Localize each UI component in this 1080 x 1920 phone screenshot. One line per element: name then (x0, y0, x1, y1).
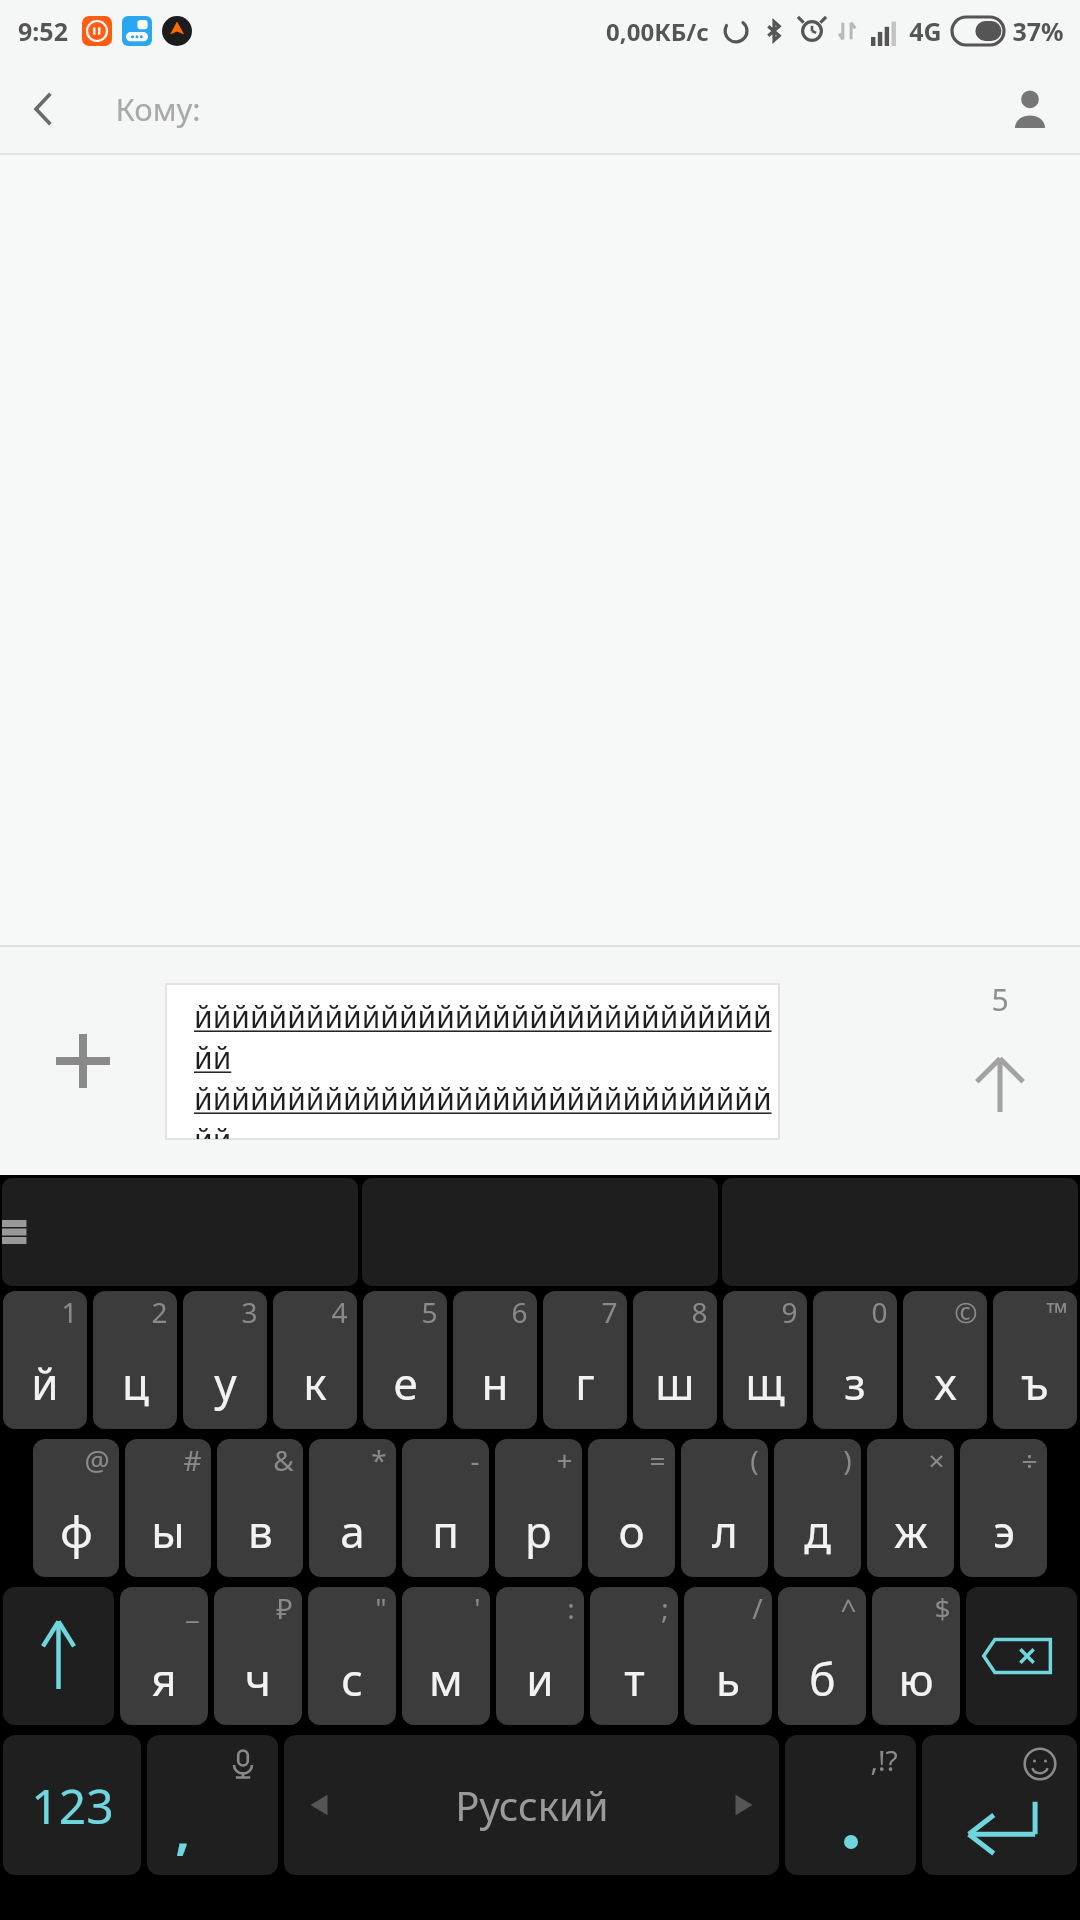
button[interactable]: Add attachment (0, 947, 165, 1175)
staticText: д (804, 1501, 831, 1561)
staticText: Русский (455, 1778, 609, 1832)
staticText: ш (655, 1353, 695, 1413)
staticText: р (525, 1501, 552, 1561)
button[interactable]: 6 (453, 1291, 537, 1429)
button[interactable]: * (309, 1439, 396, 1577)
staticText: 5 (991, 979, 1009, 1020)
staticText: с (341, 1649, 363, 1709)
button[interactable]: Comma (147, 1735, 278, 1875)
button[interactable]: 1 (3, 1291, 87, 1429)
staticText: : (567, 1589, 575, 1627)
button[interactable]: ^ (778, 1587, 866, 1725)
button[interactable]: _ (120, 1587, 208, 1725)
button[interactable]: & (217, 1439, 303, 1577)
button[interactable]: Back (0, 65, 88, 153)
button[interactable]: ™ (993, 1291, 1077, 1429)
staticText: й (31, 1353, 59, 1413)
button[interactable]: Suggestion (2, 1178, 358, 1286)
staticText: 3 (241, 1293, 258, 1331)
staticText: 9:52 (18, 14, 68, 48)
staticText: х (934, 1353, 957, 1413)
staticText: × (928, 1441, 945, 1479)
staticText: ц (122, 1353, 149, 1413)
staticText: г (575, 1353, 595, 1413)
staticText: 0 (871, 1293, 888, 1331)
button[interactable]: + (495, 1439, 582, 1577)
staticText: щ (745, 1353, 785, 1413)
staticText: 123 (31, 1773, 114, 1838)
staticText: 5 (421, 1293, 438, 1331)
button[interactable]: = (588, 1439, 675, 1577)
button[interactable]: 5 (363, 1291, 447, 1429)
button[interactable]: ( (681, 1439, 768, 1577)
button[interactable]: Period (785, 1735, 916, 1875)
staticText: " (375, 1589, 387, 1627)
staticText: л (712, 1501, 738, 1561)
staticText: 0,00КБ/с (606, 15, 709, 48)
staticText: ф (60, 1501, 93, 1561)
staticText: ы (151, 1501, 185, 1561)
staticText: ; (661, 1589, 669, 1627)
staticText: 37% (1012, 14, 1064, 48)
button[interactable]: ййййййййййййййййййййййййййййййййй (166, 984, 779, 1139)
staticText: ' (474, 1589, 481, 1627)
staticText: ййййййййййййййййййййййййййййййййй (194, 1078, 779, 1139)
staticText: у (214, 1353, 237, 1413)
button[interactable]: 4 (273, 1291, 357, 1429)
staticText: т (624, 1649, 645, 1709)
staticText: м (429, 1649, 463, 1709)
button[interactable]: ; (590, 1587, 678, 1725)
button[interactable]: × (867, 1439, 954, 1577)
button[interactable]: 8 (633, 1291, 717, 1429)
staticText: 8 (691, 1293, 708, 1331)
staticText: - (470, 1441, 480, 1479)
button[interactable]: Backspace (966, 1587, 1077, 1725)
staticText: 6 (511, 1293, 528, 1331)
button[interactable]: 123 (3, 1735, 141, 1875)
button[interactable]: © (903, 1291, 987, 1429)
button[interactable]: 3 (183, 1291, 267, 1429)
button[interactable]: 9 (723, 1291, 807, 1429)
button[interactable]: Enter (922, 1735, 1077, 1875)
staticText: ч (245, 1649, 271, 1709)
button[interactable]: - (402, 1439, 489, 1577)
staticText: ₽ (276, 1589, 293, 1627)
staticText: & (273, 1441, 294, 1479)
button[interactable]: $ (872, 1587, 960, 1725)
staticText: э (993, 1501, 1015, 1561)
button[interactable]: / (684, 1587, 772, 1725)
staticText: Кому: (115, 88, 201, 130)
button[interactable]: Send (920, 947, 1080, 1175)
staticText: а (340, 1501, 365, 1561)
staticText: ^ (840, 1589, 857, 1627)
button[interactable]: # (125, 1439, 211, 1577)
button[interactable]: ' (402, 1587, 490, 1725)
staticText: ж (894, 1501, 928, 1561)
button[interactable]: ) (774, 1439, 861, 1577)
staticText: н (481, 1353, 509, 1413)
staticText: _ (186, 1589, 199, 1627)
button[interactable]: ₽ (214, 1587, 302, 1725)
staticText: ь (716, 1649, 740, 1709)
staticText: ййййййййййййййййййййййййййййййййй (194, 996, 779, 1078)
staticText: в (248, 1501, 273, 1561)
button[interactable]: Space — Русский (284, 1735, 779, 1875)
staticText: + (556, 1441, 573, 1479)
button[interactable]: 2 (93, 1291, 177, 1429)
button[interactable]: Contacts (980, 62, 1080, 155)
button[interactable]: " (308, 1587, 396, 1725)
button[interactable]: Shift (3, 1587, 114, 1725)
button[interactable]: 7 (543, 1291, 627, 1429)
staticText: о (618, 1501, 645, 1561)
button[interactable]: : (496, 1587, 584, 1725)
staticText: 4 (331, 1293, 348, 1331)
staticText: © (954, 1293, 978, 1331)
button[interactable]: @ (33, 1439, 119, 1577)
staticText: 4G (909, 14, 942, 48)
button[interactable]: 0 (813, 1291, 897, 1429)
staticText: я (151, 1649, 177, 1709)
button[interactable]: ÷ (960, 1439, 1047, 1577)
staticText: ) (843, 1441, 852, 1479)
